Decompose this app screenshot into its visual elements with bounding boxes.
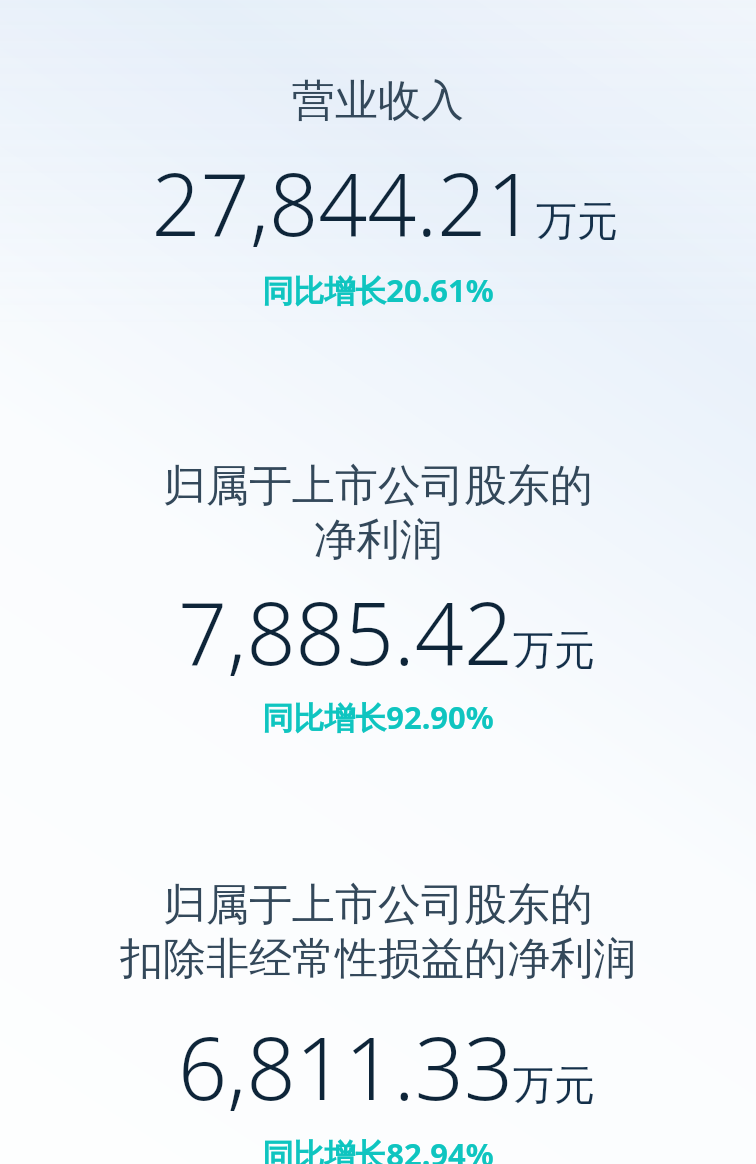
staticText: 扣除非经常性损益的净利润 — [0, 932, 756, 986]
staticText: 同比增长82.94% — [0, 1133, 756, 1164]
staticText: 同比增长92.90% — [0, 696, 756, 738]
button[interactable]: 营业收入 — [0, 74, 756, 311]
staticText: 万元 — [536, 196, 618, 248]
staticText: 归属于上市公司股东的 — [0, 459, 756, 513]
staticText: 6,811.33 — [178, 1008, 513, 1125]
button[interactable]: 归属于上市公司股东的 — [0, 878, 756, 1164]
staticText: 7,885.42 — [178, 573, 513, 690]
staticText: 同比增长20.61% — [0, 269, 756, 311]
staticText: 万元 — [513, 625, 595, 677]
staticText: 归属于上市公司股东的 — [0, 878, 756, 932]
button[interactable]: 归属于上市公司股东的 — [0, 459, 756, 738]
staticText: 27,844.21 — [151, 144, 536, 261]
staticText: 万元 — [513, 1060, 595, 1112]
staticText: 营业收入 — [0, 74, 756, 128]
staticText: 净利润 — [0, 513, 756, 567]
